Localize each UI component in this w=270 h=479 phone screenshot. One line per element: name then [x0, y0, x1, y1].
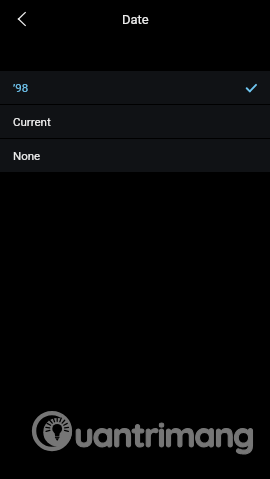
button[interactable]: None [0, 139, 270, 172]
staticText: uantrimang [74, 413, 254, 456]
staticText: Date [122, 12, 149, 27]
staticText: Current [13, 115, 51, 128]
staticText: None [13, 149, 41, 162]
button[interactable]: ’98 [0, 71, 270, 104]
button[interactable]: Current [0, 105, 270, 138]
staticText: ’98 [13, 81, 29, 94]
staticText: uantrimang [74, 413, 254, 456]
button[interactable]: Back [7, 4, 37, 34]
